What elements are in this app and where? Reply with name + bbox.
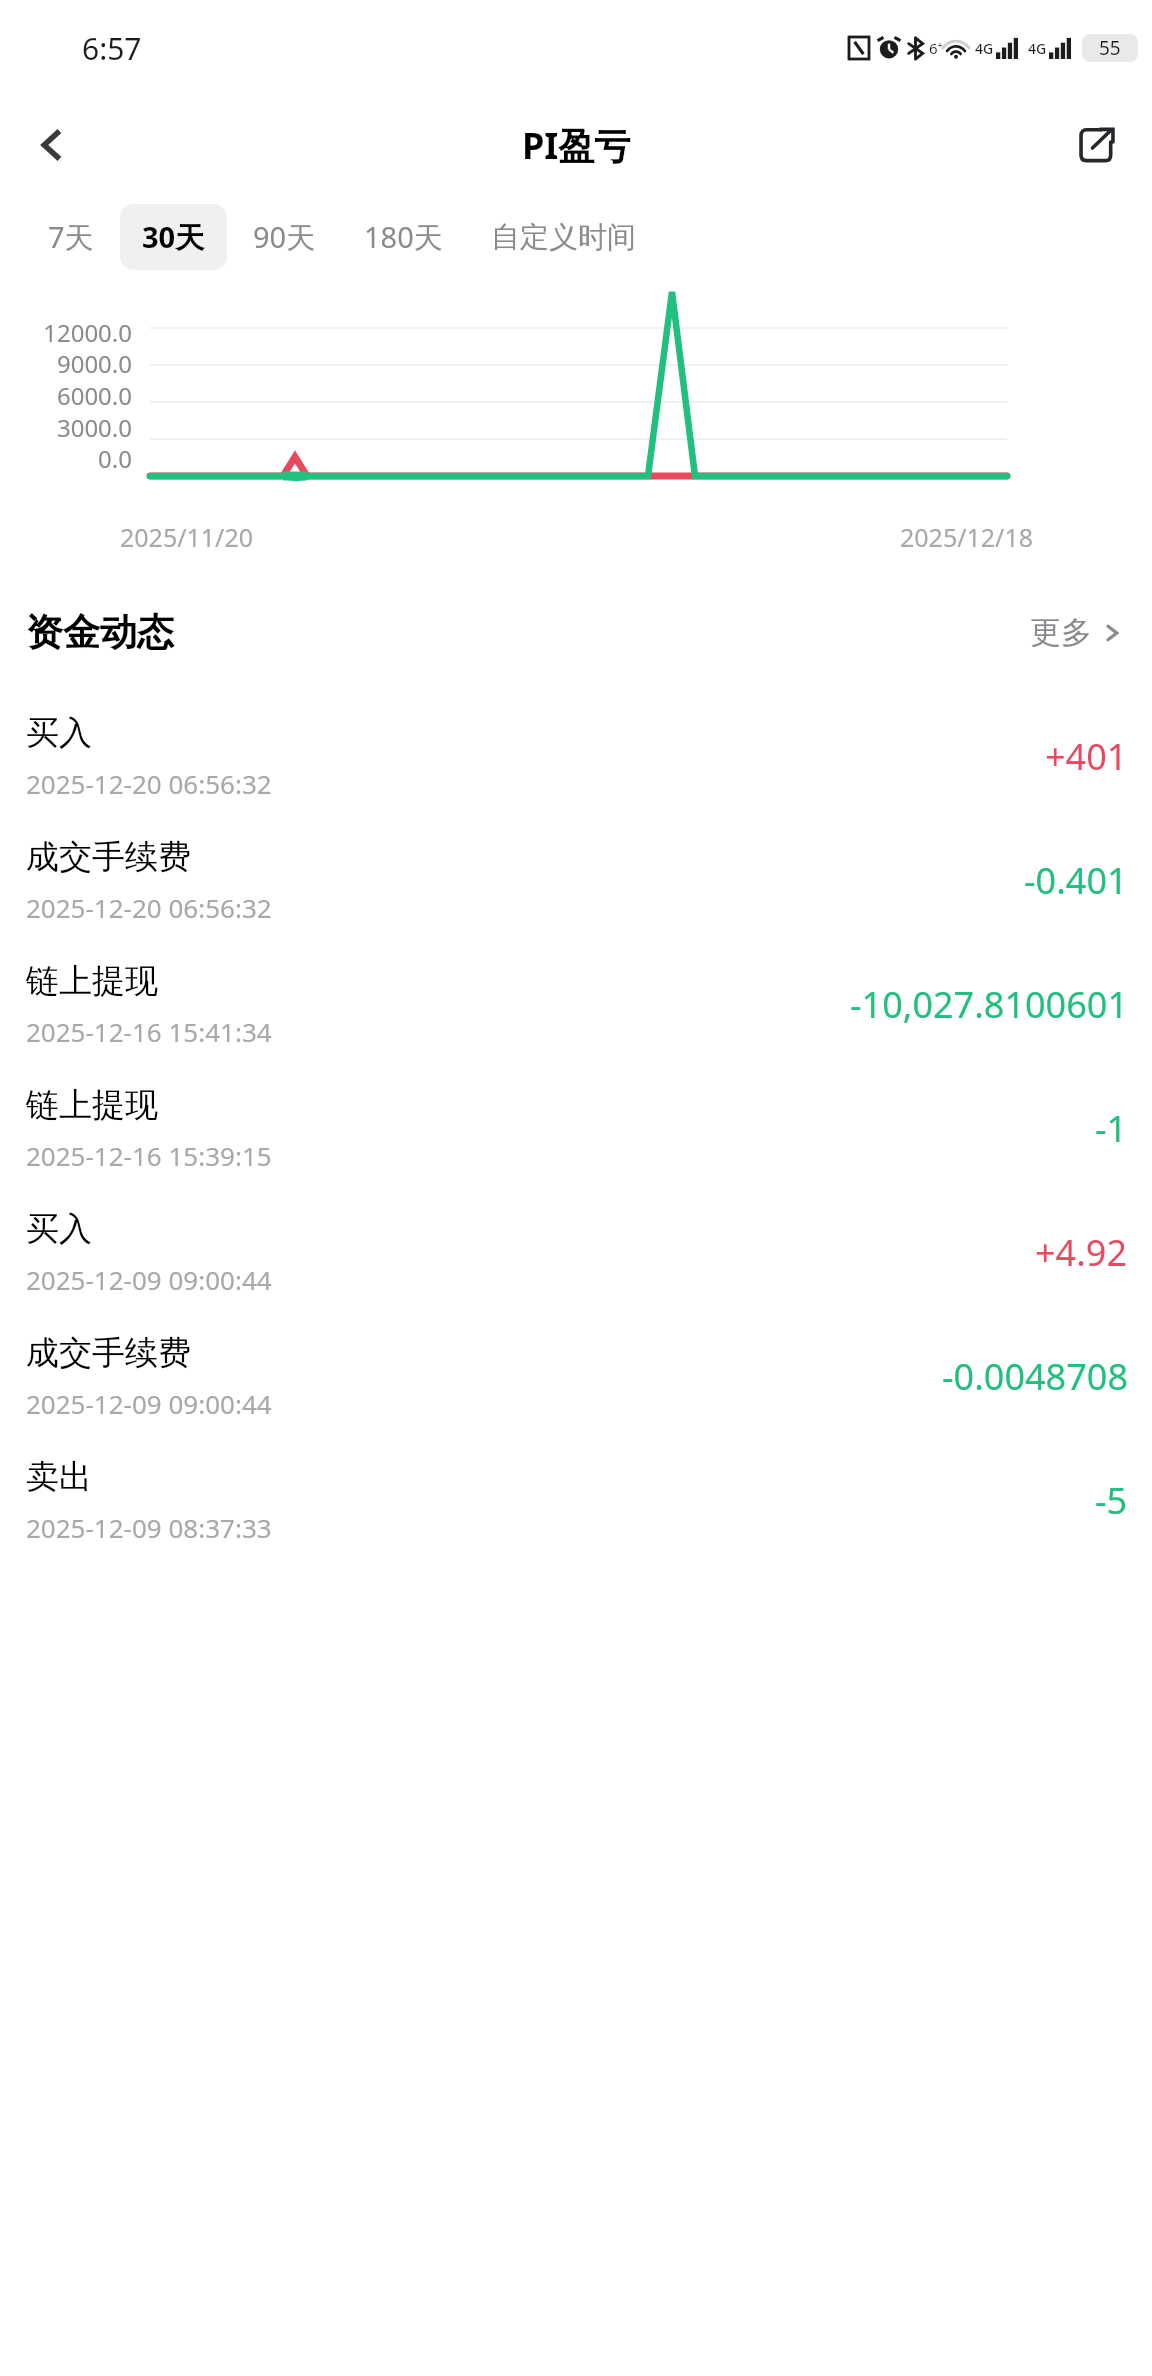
staticText: 自定义时间 — [491, 219, 636, 256]
staticText: 2025-12-20 06:56:32 — [26, 890, 272, 925]
staticText: 2025-12-09 09:00:44 — [26, 1262, 272, 1297]
staticText: PI盈亏 — [522, 121, 631, 170]
staticText: 4G — [975, 39, 994, 58]
staticText: 3000.0 — [0, 411, 132, 444]
staticText: 链上提现 — [26, 960, 158, 1002]
button[interactable]: 卖出 — [0, 1438, 1152, 1562]
button[interactable]: Back — [18, 111, 86, 179]
staticText: 6:57 — [82, 28, 142, 69]
staticText: -0.401 — [1024, 856, 1128, 905]
staticText: 90天 — [253, 217, 316, 257]
staticText: 2025/12/18 — [900, 520, 1034, 554]
staticText: 2025-12-09 09:00:44 — [26, 1386, 272, 1421]
staticText: 180天 — [364, 217, 443, 257]
button[interactable]: 90天 — [231, 204, 338, 270]
staticText: 6000.0 — [0, 379, 132, 412]
staticText: 12000.0 — [0, 316, 132, 349]
staticText: 成交手续费 — [26, 836, 191, 878]
staticText: 链上提现 — [26, 1084, 158, 1126]
staticText: -0.0048708 — [942, 1352, 1128, 1401]
button[interactable]: 链上提现 — [0, 942, 1152, 1066]
staticText: 2025-12-09 08:37:33 — [26, 1510, 272, 1545]
staticText: 0.0 — [0, 442, 132, 475]
staticText: 卖出 — [26, 1456, 92, 1498]
staticText: 55 — [1099, 35, 1121, 61]
staticText: 2025-12-16 15:39:15 — [26, 1138, 272, 1173]
staticText: 30天 — [142, 217, 205, 257]
staticText: -1 — [1095, 1104, 1128, 1153]
button[interactable]: 自定义时间 — [469, 206, 658, 269]
staticText: +4.92 — [1035, 1228, 1128, 1277]
staticText: 资金动态 — [26, 609, 174, 656]
button[interactable]: 7天 — [26, 204, 116, 270]
staticText: 买入 — [26, 1208, 92, 1250]
button[interactable]: 30天 — [120, 204, 227, 270]
button[interactable]: 成交手续费 — [0, 1314, 1152, 1438]
staticText: 买入 — [26, 712, 92, 754]
staticText: 7天 — [48, 217, 94, 257]
staticText: 2025-12-16 15:41:34 — [26, 1014, 272, 1049]
button[interactable]: 更多 — [1024, 607, 1128, 658]
button[interactable]: Share — [1062, 110, 1132, 180]
staticText: 4G — [1028, 39, 1047, 58]
staticText: -5 — [1095, 1476, 1128, 1525]
button[interactable]: 180天 — [342, 204, 465, 270]
staticText: 6⁺ — [929, 38, 943, 58]
button[interactable]: 买入 — [0, 694, 1152, 818]
staticText: -10,027.8100601 — [850, 980, 1128, 1029]
staticText: 成交手续费 — [26, 1332, 191, 1374]
staticText: 9000.0 — [0, 347, 132, 380]
staticText: 2025-12-20 06:56:32 — [26, 766, 272, 801]
staticText: 更多 — [1030, 613, 1092, 652]
button[interactable]: 成交手续费 — [0, 818, 1152, 942]
button[interactable]: 链上提现 — [0, 1066, 1152, 1190]
button[interactable]: 买入 — [0, 1190, 1152, 1314]
staticText: 2025/11/20 — [120, 520, 254, 554]
staticText: +401 — [1045, 732, 1128, 781]
